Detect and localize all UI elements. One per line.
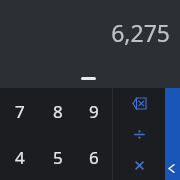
button[interactable]: 9: [76, 88, 112, 134]
staticText: 9: [89, 100, 99, 123]
staticText: 5: [53, 146, 63, 169]
button[interactable]: 8: [40, 88, 76, 134]
staticText: 6,275: [111, 17, 170, 48]
button[interactable]: 5: [40, 134, 76, 180]
button[interactable]: 7: [0, 88, 40, 134]
staticText: 4: [15, 146, 25, 169]
button[interactable]: Divide: [113, 119, 165, 150]
button[interactable]: Open panel: [165, 88, 180, 180]
button[interactable]: Backspace: [113, 88, 165, 119]
button[interactable]: 6,275: [0, 0, 180, 88]
staticText: 8: [53, 100, 63, 123]
button[interactable]: 6: [76, 134, 112, 180]
staticText: 6: [89, 146, 99, 169]
button[interactable]: Multiply: [113, 150, 165, 180]
button[interactable]: 4: [0, 134, 40, 180]
staticText: 7: [15, 100, 25, 123]
